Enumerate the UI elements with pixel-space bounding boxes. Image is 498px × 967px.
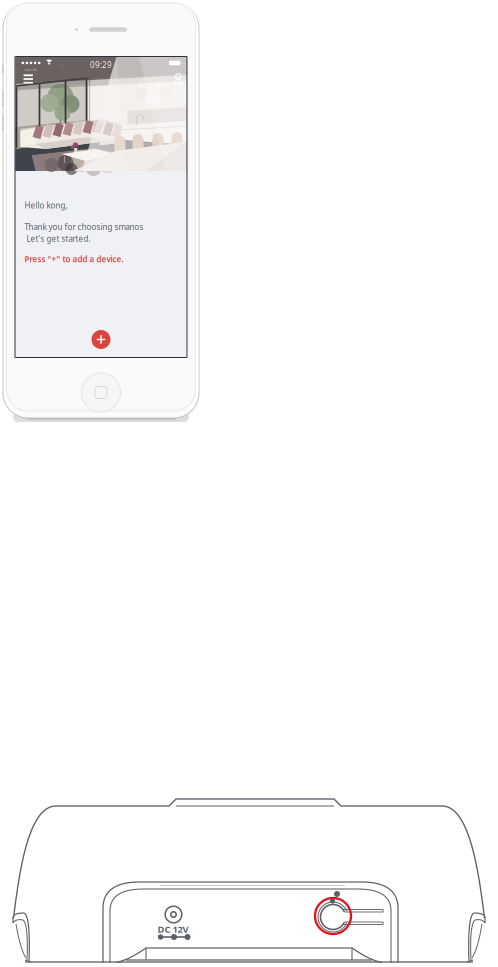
staticText: DC 12V xyxy=(157,923,188,935)
staticText: Hello kong, xyxy=(24,200,67,211)
staticText: Press "+" to add a device. xyxy=(24,254,123,264)
button[interactable]: Add a device xyxy=(88,327,113,352)
button[interactable]: Menu xyxy=(23,71,41,87)
staticText: Let's get started. xyxy=(26,233,90,244)
staticText: carrier xyxy=(24,67,37,72)
staticText: Thank you for choosing smanos xyxy=(24,222,143,232)
button[interactable]: Scenes xyxy=(166,71,180,87)
staticText: 09:29 xyxy=(90,60,112,70)
